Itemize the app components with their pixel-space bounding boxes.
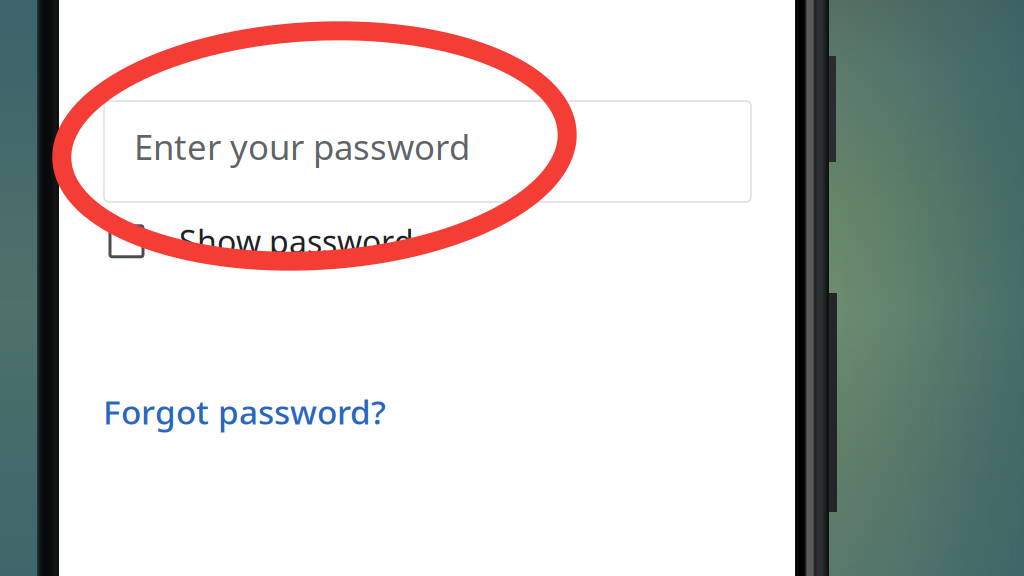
staticText: Enter your password [134,123,470,169]
staticText: Show password [179,220,414,262]
button[interactable]: Forgot password? [103,389,386,434]
button[interactable]: Show password [110,216,510,258]
staticText: Forgot password? [103,389,386,434]
button[interactable]: Enter your password [104,101,751,202]
